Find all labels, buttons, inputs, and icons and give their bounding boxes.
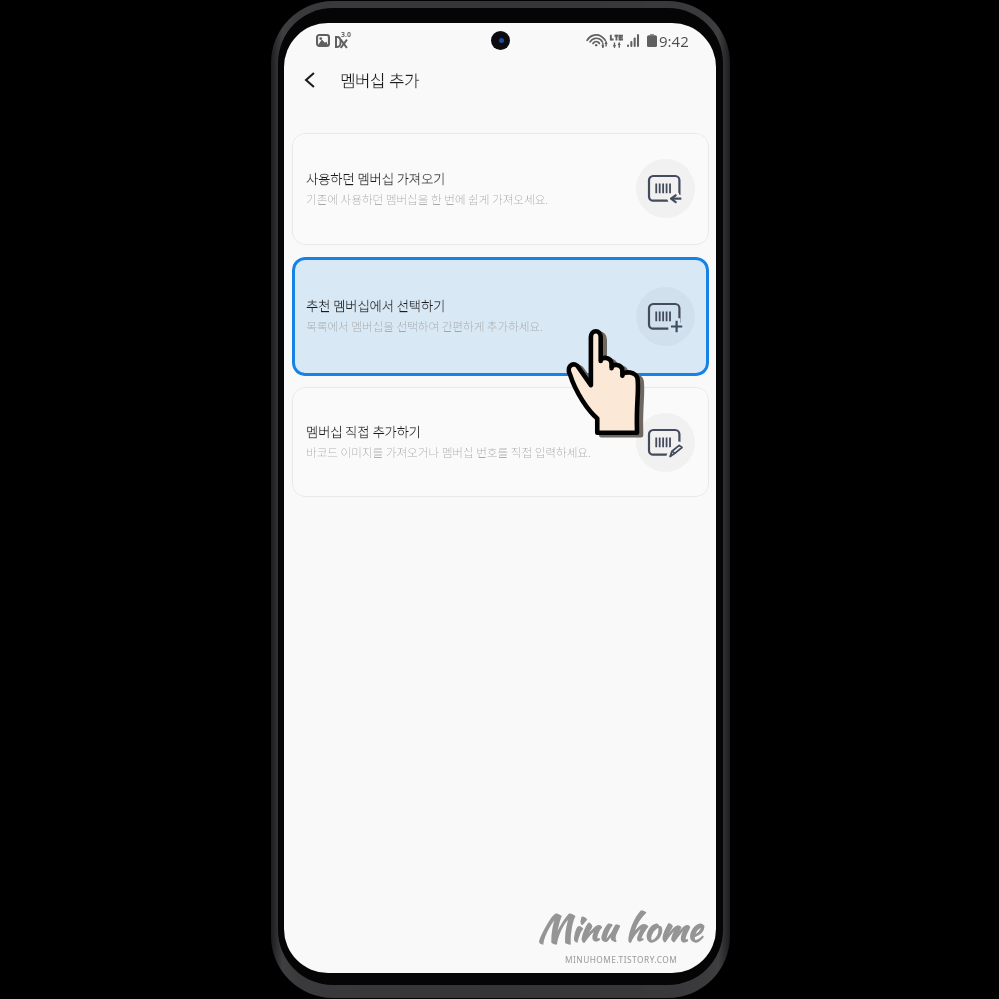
staticText: 멤버십 추가 (340, 68, 420, 92)
staticText: 기존에 사용하던 멤버십을 한 번에 쉽게 가져오세요. (306, 191, 548, 208)
staticText: 바코드 이미지를 가져오거나 멤버십 번호를 직접 입력하세요. (306, 444, 591, 461)
button[interactable]: 사용하던 멤버십 가져오기 (292, 133, 709, 245)
staticText: 추천 멤버십에서 선택하기 (306, 296, 446, 315)
button[interactable]: Back (288, 58, 332, 102)
staticText: 3.0 (341, 30, 351, 40)
button[interactable]: 추천 멤버십에서 선택하기 (292, 257, 709, 376)
button[interactable]: 멤버십 직접 추가하기 (292, 387, 709, 497)
staticText: 목록에서 멤버십을 선택하여 간편하게 추가하세요. (306, 318, 543, 335)
staticText: Minu home (538, 902, 702, 954)
staticText: 9:42 (659, 31, 689, 51)
staticText: MINUHOME.TISTORY.COM (565, 954, 678, 965)
staticText: 사용하던 멤버십 가져오기 (306, 169, 446, 188)
staticText: 멤버십 직접 추가하기 (306, 422, 421, 441)
